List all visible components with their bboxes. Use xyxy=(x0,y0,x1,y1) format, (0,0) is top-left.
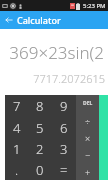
button[interactable]: + xyxy=(76,163,99,180)
staticText: 9 xyxy=(60,97,68,115)
button[interactable]: 3 xyxy=(52,138,76,159)
button[interactable]: 9 xyxy=(52,95,76,117)
button[interactable]: Back xyxy=(0,11,17,29)
staticText: 5:23 PM xyxy=(83,2,106,10)
staticText: 6 xyxy=(60,119,68,137)
staticText: 0 xyxy=(36,161,44,179)
staticText: 369×23sin(2 xyxy=(0,41,104,64)
button[interactable]: 6 xyxy=(52,117,76,138)
button[interactable]: 0 xyxy=(28,159,52,180)
button[interactable]: ÷ xyxy=(76,112,99,129)
button[interactable]: 8 xyxy=(28,95,52,117)
staticText: 5 xyxy=(36,119,44,137)
button[interactable]: − xyxy=(76,146,99,163)
staticText: 4 xyxy=(13,119,21,137)
button[interactable]: 4 xyxy=(5,117,28,138)
staticText: 3 xyxy=(60,140,68,158)
button[interactable]: 7 xyxy=(5,95,28,117)
staticText: 2 xyxy=(36,140,44,158)
button[interactable]: × xyxy=(76,129,99,146)
button[interactable]: 2 xyxy=(28,138,52,159)
staticText: ÷ xyxy=(85,115,91,127)
staticText: 7717.2072615 xyxy=(0,71,105,86)
button[interactable]: 5 xyxy=(28,117,52,138)
staticText: × xyxy=(85,132,91,144)
button[interactable]: DEL xyxy=(76,95,99,112)
staticText: 1 xyxy=(13,140,21,158)
button[interactable]: 1 xyxy=(5,138,28,159)
staticText: Calculator xyxy=(17,14,61,26)
staticText: 7 xyxy=(13,97,21,115)
staticText: = xyxy=(60,161,68,179)
button[interactable]: . xyxy=(5,159,28,180)
button[interactable]: = xyxy=(52,159,76,180)
staticText: − xyxy=(85,149,91,161)
staticText: . xyxy=(15,161,19,179)
staticText: + xyxy=(85,166,91,178)
staticText: 8 xyxy=(36,97,44,115)
staticText: DEL xyxy=(83,100,93,107)
